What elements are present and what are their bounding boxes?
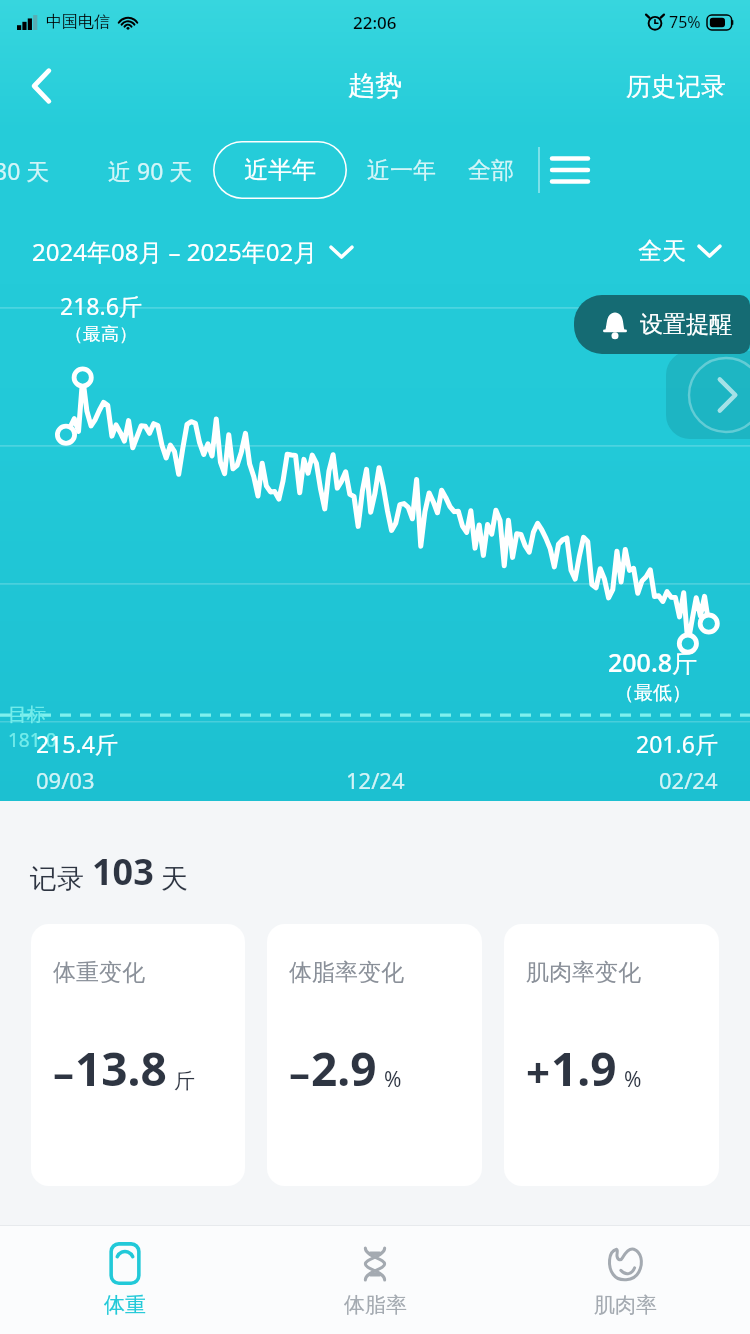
staticText: 全部 <box>468 156 514 185</box>
staticText: 215.4斤 <box>36 728 118 759</box>
staticText: 13.8 <box>75 1037 167 1100</box>
staticText: 201.6斤 <box>636 728 718 759</box>
staticText: + <box>526 1043 551 1100</box>
staticText: 中国电信 <box>46 12 110 32</box>
staticText: 近半年 <box>244 155 316 185</box>
staticText: 近 90 天 <box>108 155 193 186</box>
button[interactable]: 体脂率 <box>250 1235 500 1326</box>
button[interactable]: Back <box>12 57 70 115</box>
button[interactable]: 2024年08月 – 2025年02月 <box>24 227 360 276</box>
staticText: 2024年08月 – 2025年02月 <box>32 235 318 268</box>
staticText: – <box>289 1043 311 1100</box>
staticText: 体重 <box>104 1292 146 1318</box>
staticText: 近一年 <box>367 156 436 185</box>
staticText: 设置提醒 <box>640 310 732 339</box>
staticText: 30 天 <box>0 155 50 186</box>
button[interactable]: 历史记录 <box>602 57 750 116</box>
staticText: 103 <box>92 847 154 896</box>
staticText: 肌肉率 <box>594 1292 657 1318</box>
staticText: 181.0 <box>8 727 57 753</box>
staticText: 斤 <box>174 1068 195 1094</box>
button[interactable]: Menu <box>540 140 600 200</box>
button[interactable]: 体重 <box>0 1235 250 1326</box>
staticText: 09/03 <box>36 765 95 795</box>
staticText: 200.8斤 <box>608 645 698 679</box>
staticText: % <box>624 1065 642 1094</box>
staticText: 22:06 <box>353 11 397 34</box>
button[interactable]: 全部 <box>458 144 524 197</box>
staticText: 体脂率变化 <box>289 958 404 987</box>
button[interactable]: 体脂率变化 <box>267 924 482 1186</box>
staticText: 趋势 <box>348 69 402 103</box>
button[interactable]: Next <box>666 351 750 439</box>
button[interactable]: 肌肉率 <box>500 1235 750 1326</box>
staticText: 2.9 <box>311 1037 377 1100</box>
button[interactable]: 30 天 <box>0 143 62 198</box>
staticText: % <box>384 1065 402 1094</box>
button[interactable]: 近半年 <box>213 141 347 199</box>
staticText: – <box>53 1043 75 1100</box>
staticText: 历史记录 <box>626 71 726 102</box>
staticText: 目标 <box>8 703 46 727</box>
staticText: 02/24 <box>659 765 718 795</box>
staticText: 12/24 <box>346 765 405 795</box>
staticText: 肌肉率变化 <box>526 958 641 987</box>
button[interactable]: 全天 <box>630 228 728 274</box>
staticText: 1.9 <box>551 1037 617 1100</box>
button[interactable]: 体重变化 <box>31 924 245 1186</box>
button[interactable]: 近一年 <box>357 144 446 197</box>
staticText: 体脂率 <box>344 1292 407 1318</box>
staticText: 记录 <box>30 859 92 896</box>
button[interactable]: 肌肉率变化 <box>504 924 719 1186</box>
staticText: 218.6斤 <box>60 290 142 321</box>
staticText: 天 <box>154 859 189 896</box>
staticText: （最低） <box>615 681 691 705</box>
button[interactable]: 设置提醒 <box>574 295 750 354</box>
staticText: 75% <box>669 11 701 33</box>
staticText: 全天 <box>638 236 686 266</box>
staticText: 体重变化 <box>53 958 145 987</box>
staticText: （最高） <box>65 323 137 346</box>
button[interactable]: 近 90 天 <box>98 143 203 198</box>
